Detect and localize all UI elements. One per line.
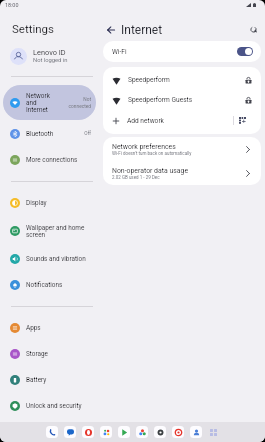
button[interactable]: Add network [103, 110, 261, 131]
staticText: Storage [26, 350, 91, 358]
staticText: Add network [127, 117, 233, 125]
button[interactable]: Play Store [118, 426, 130, 438]
button[interactable]: Apps [3, 316, 96, 340]
staticText: Wi-Fi [112, 48, 127, 56]
staticText: Unlock and security [26, 402, 91, 410]
staticText: Wi-Fi doesn't turn back on automatically [112, 151, 192, 156]
staticText: Bluetooth [26, 130, 84, 138]
button[interactable]: Messages [64, 426, 76, 438]
button[interactable]: Non-operator data usage [103, 161, 261, 185]
button[interactable]: Notifications [3, 273, 96, 297]
button[interactable]: Lenovo ID [0, 44, 100, 68]
staticText: Network and Internet [26, 92, 68, 113]
button[interactable]: Settings [154, 426, 166, 438]
staticText: Notifications [26, 281, 91, 289]
staticText: Wallpaper and home screen [26, 224, 91, 238]
button[interactable]: Wallpaper and home screen [3, 217, 96, 245]
staticText: Apps [26, 324, 91, 332]
staticText: Speedperform [128, 76, 245, 84]
staticText: 18:00 [5, 2, 19, 8]
staticText: Lenovo ID [33, 48, 66, 57]
button[interactable]: Storage [3, 342, 96, 366]
button[interactable]: Unlock and security [3, 394, 96, 418]
staticText: 2.02 GB used 1 - 29 Dec [112, 175, 160, 180]
button[interactable]: Photos [136, 426, 148, 438]
button[interactable]: Phone [46, 426, 58, 438]
button[interactable]: Speedperform Guests [103, 90, 261, 110]
staticText: Battery [26, 376, 91, 384]
staticText: Sounds and vibration [26, 255, 91, 263]
staticText: Speedperform Guests [128, 96, 245, 104]
staticText: More connections [26, 156, 91, 164]
button[interactable]: Bluetooth [3, 122, 96, 146]
button[interactable]: Network preferences [103, 137, 261, 161]
staticText: Not connected [68, 97, 91, 109]
button[interactable]: All apps [207, 426, 219, 438]
button[interactable]: Refresh [246, 22, 261, 37]
button[interactable]: Wi-Fi [103, 41, 261, 62]
staticText: Not logged in [33, 57, 68, 64]
button[interactable]: Contacts [100, 426, 112, 438]
button[interactable]: Contacts app [190, 426, 202, 438]
staticText: Internet [121, 23, 163, 37]
button[interactable]: Screen recorder [172, 426, 184, 438]
button[interactable]: Back [103, 22, 118, 37]
button[interactable]: Battery [3, 368, 96, 392]
staticText: Display [26, 199, 91, 207]
button[interactable]: Scan QR code [239, 117, 246, 124]
button[interactable]: Sounds and vibration [3, 247, 96, 271]
staticText: Network preferences [112, 143, 176, 151]
staticText: Off [84, 131, 91, 137]
button[interactable]: Opera [82, 426, 94, 438]
button[interactable]: More connections [3, 148, 96, 172]
button[interactable]: Display [3, 191, 96, 215]
staticText: Non-operator data usage [112, 167, 189, 175]
button[interactable]: Network and Internet [3, 85, 96, 120]
button[interactable]: Speedperform [103, 70, 261, 90]
staticText: Settings [12, 22, 54, 35]
